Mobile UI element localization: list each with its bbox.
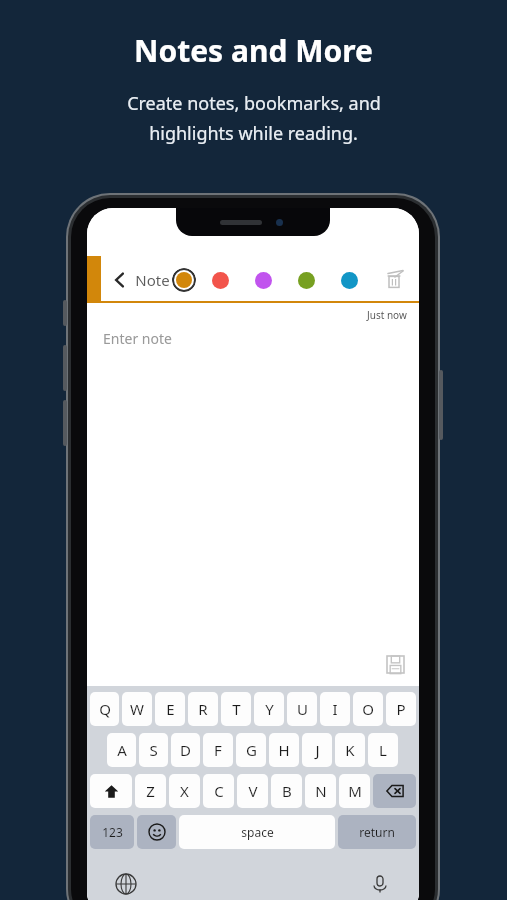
button[interactable]: Green colour (295, 269, 317, 291)
button[interactable]: U (287, 692, 317, 726)
button[interactable]: A (107, 733, 136, 767)
staticText: Enter note (103, 329, 172, 348)
button[interactable]: W (122, 692, 152, 726)
button[interactable]: X (169, 774, 200, 808)
button[interactable]: Blue colour (338, 269, 360, 291)
button[interactable]: L (368, 733, 398, 767)
button[interactable]: space (179, 815, 335, 849)
button[interactable]: Orange colour (171, 267, 196, 292)
staticText: T (232, 699, 241, 719)
button[interactable]: H (269, 733, 299, 767)
button[interactable]: P (386, 692, 416, 726)
button[interactable]: K (335, 733, 365, 767)
staticText: F (214, 740, 222, 760)
button[interactable]: Change keyboard (113, 871, 139, 897)
button[interactable]: Backspace (373, 774, 416, 808)
staticText: D (180, 740, 191, 760)
staticText: P (396, 699, 406, 719)
staticText: S (149, 740, 158, 760)
staticText: X (180, 781, 189, 801)
staticText: Note (135, 270, 170, 290)
button[interactable]: N (305, 774, 336, 808)
staticText: J (315, 740, 320, 760)
staticText: N (315, 781, 327, 801)
button[interactable]: C (203, 774, 234, 808)
button[interactable]: return (338, 815, 416, 849)
button[interactable]: E (155, 692, 185, 726)
staticText: Create notes, bookmarks, and (127, 91, 381, 116)
staticText: Notes and More (134, 30, 373, 71)
button[interactable]: R (188, 692, 218, 726)
button[interactable]: Delete note (381, 267, 407, 293)
button[interactable]: 123 (90, 815, 134, 849)
staticText: Z (146, 781, 155, 801)
staticText: B (282, 781, 292, 801)
staticText: return (359, 824, 395, 840)
button[interactable]: Red colour (209, 269, 231, 291)
staticText: L (379, 740, 387, 760)
button[interactable]: I (320, 692, 350, 726)
button[interactable]: Back (109, 269, 131, 291)
staticText: I (332, 699, 338, 719)
staticText: Q (99, 699, 111, 719)
staticText: G (246, 740, 257, 760)
staticText: 123 (102, 824, 123, 840)
staticText: H (278, 740, 290, 760)
button[interactable]: S (139, 733, 168, 767)
button[interactable]: M (339, 774, 370, 808)
button[interactable]: B (271, 774, 302, 808)
button[interactable]: O (353, 692, 383, 726)
button[interactable]: G (236, 733, 266, 767)
staticText: K (345, 740, 355, 760)
button[interactable]: Save note (383, 652, 407, 676)
staticText: V (248, 781, 258, 801)
staticText: M (348, 781, 362, 801)
staticText: Y (265, 699, 274, 719)
button[interactable]: F (203, 733, 233, 767)
button[interactable]: J (302, 733, 332, 767)
staticText: C (214, 781, 224, 801)
button[interactable]: D (171, 733, 200, 767)
staticText: space (241, 824, 274, 840)
button[interactable]: Q (90, 692, 119, 726)
staticText: highlights while reading. (149, 121, 358, 146)
button[interactable]: Emoji (137, 815, 176, 849)
staticText: O (362, 699, 374, 719)
button[interactable]: T (221, 692, 251, 726)
staticText: U (297, 699, 308, 719)
button[interactable]: Y (254, 692, 284, 726)
staticText: A (117, 740, 127, 760)
button[interactable]: Purple colour (252, 269, 274, 291)
button[interactable]: Dictation (367, 871, 393, 897)
button[interactable]: Z (135, 774, 166, 808)
staticText: E (166, 699, 175, 719)
staticText: Just now (367, 308, 407, 322)
button[interactable]: Shift (90, 774, 132, 808)
button[interactable]: V (237, 774, 268, 808)
staticText: R (198, 699, 208, 719)
staticText: W (130, 699, 144, 719)
